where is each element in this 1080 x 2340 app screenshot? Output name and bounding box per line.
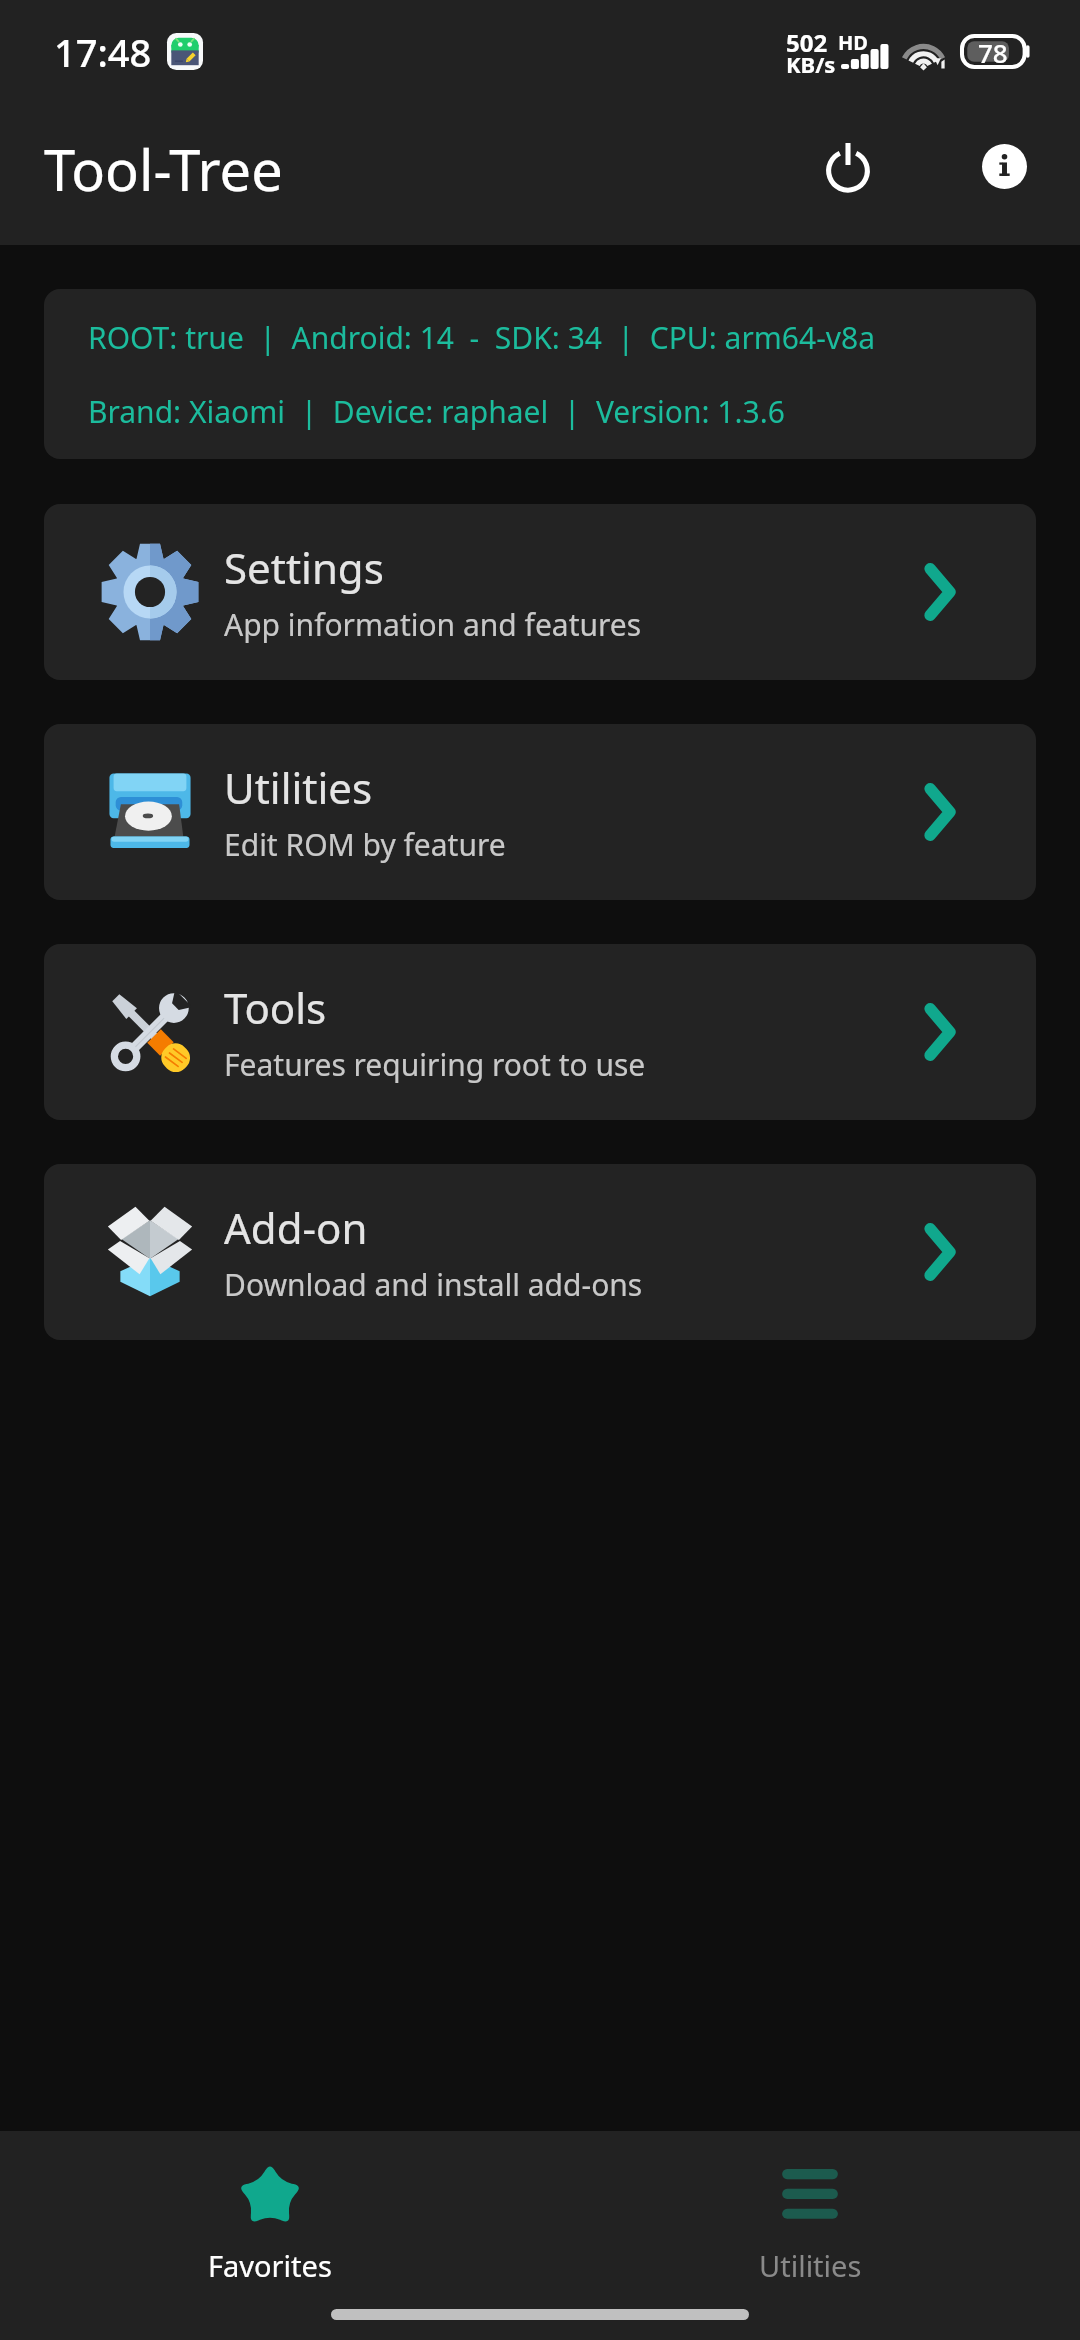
button[interactable]: ROOT: true | Android: 14 - SDK: 34 | CPU…: [44, 289, 1036, 459]
staticText: Favorites: [208, 2246, 332, 2285]
staticText: 17:48: [54, 26, 152, 78]
staticText: 502: [786, 26, 828, 59]
button[interactable]: Utilities: [44, 724, 1036, 900]
staticText: Edit ROM by feature: [224, 824, 506, 865]
button[interactable]: Tools: [44, 944, 1036, 1120]
staticText: Add-on: [224, 1199, 368, 1256]
staticText: 78: [978, 35, 1008, 70]
staticText: Tools: [224, 979, 327, 1036]
button[interactable]: Add-on: [44, 1164, 1036, 1340]
button[interactable]: Settings: [44, 504, 1036, 680]
button[interactable]: Utilities: [540, 2131, 1080, 2299]
staticText: KB/s: [786, 49, 836, 79]
staticText: Tool-Tree: [44, 131, 283, 207]
button[interactable]: Favorites: [0, 2131, 540, 2299]
staticText: ROOT: true | Android: 14 - SDK: 34 | CPU…: [88, 317, 876, 358]
button[interactable]: Power: [796, 114, 900, 218]
staticText: Features requiring root to use: [224, 1044, 646, 1085]
staticText: Utilities: [224, 759, 373, 816]
staticText: Download and install add-ons: [224, 1264, 643, 1305]
staticText: HD: [838, 29, 868, 56]
staticText: Brand: Xiaomi | Device: raphael | Versio…: [88, 391, 785, 432]
staticText: Settings: [224, 539, 384, 596]
button[interactable]: Info: [952, 114, 1056, 218]
staticText: Utilities: [759, 2246, 862, 2285]
staticText: App information and features: [224, 604, 642, 645]
